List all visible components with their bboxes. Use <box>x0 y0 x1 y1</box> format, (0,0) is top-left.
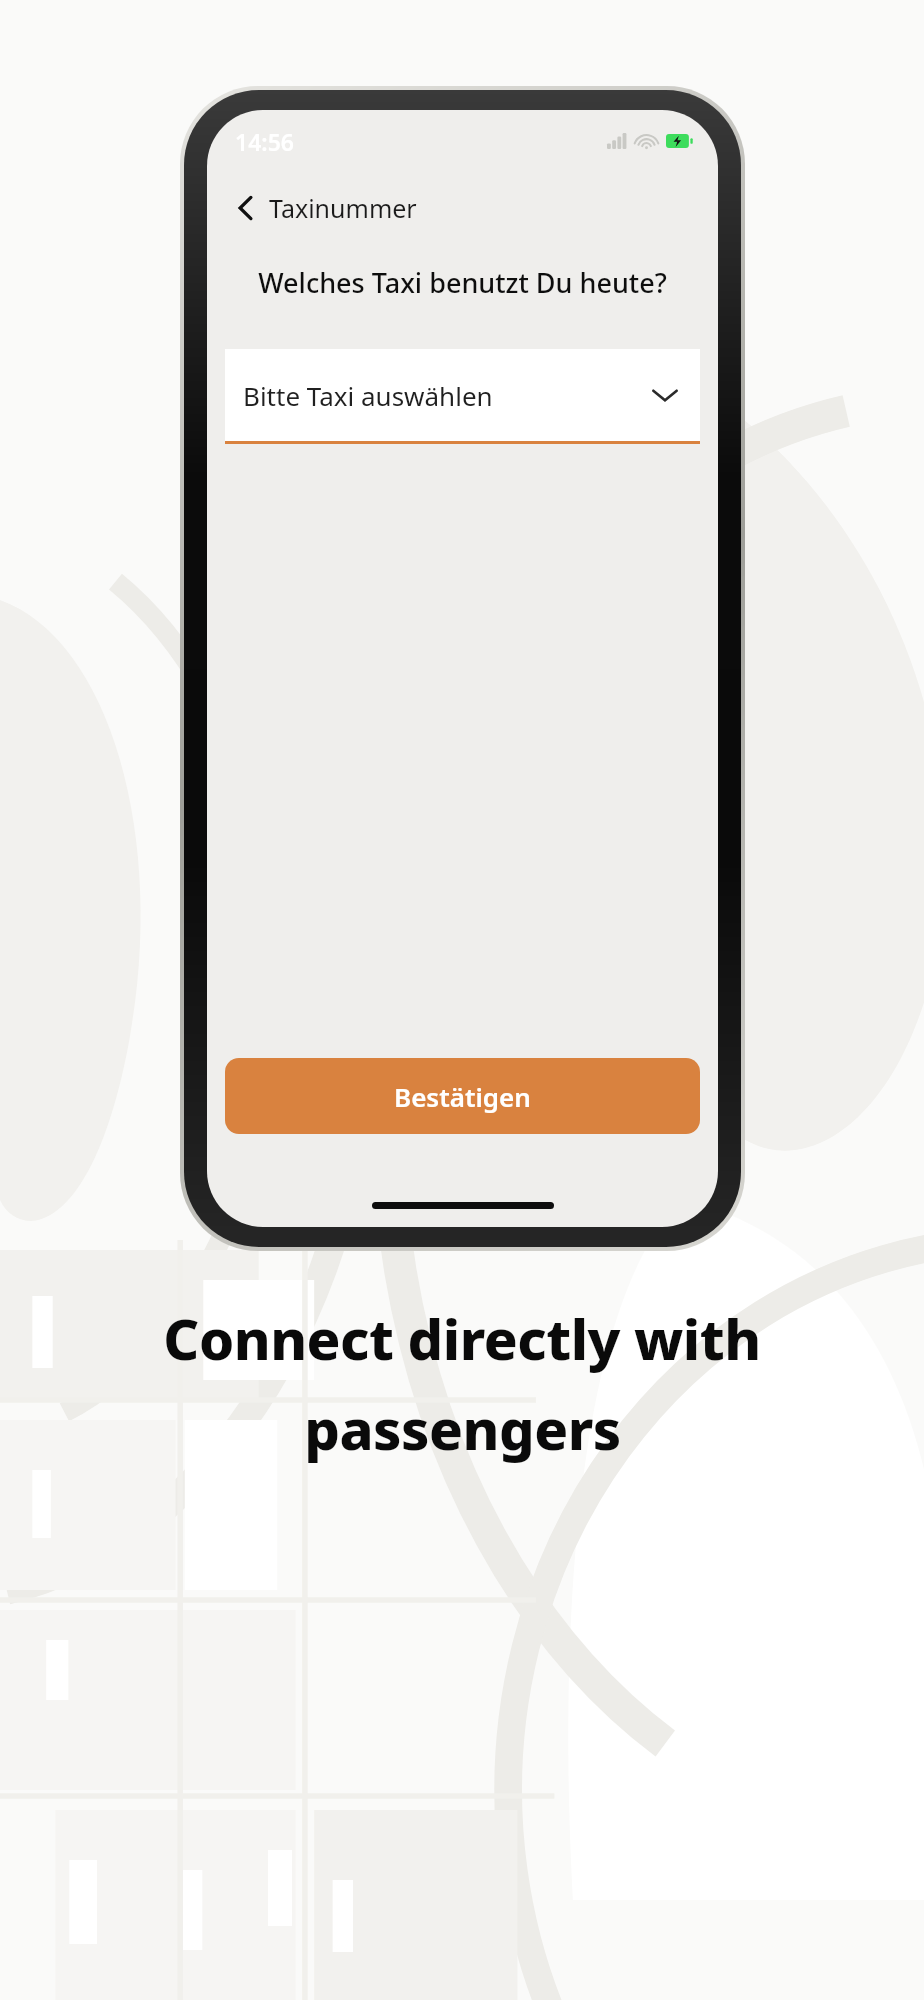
staticText: passengers <box>304 1390 621 1466</box>
staticText: Taxinummer <box>269 191 417 225</box>
button[interactable]: Back <box>227 172 718 244</box>
button[interactable]: Bestätigen <box>225 1058 700 1134</box>
other: Open taxi list <box>648 378 682 412</box>
staticText: Bitte Taxi auswählen <box>243 378 493 413</box>
staticText: Connect directly with <box>163 1300 761 1376</box>
staticText: Welches Taxi benutzt Du heute? <box>207 264 718 301</box>
staticText: 14:56 <box>235 126 294 157</box>
other: Back <box>227 190 263 226</box>
staticText: Bestätigen <box>394 1079 531 1114</box>
button[interactable]: Bitte Taxi auswählen <box>225 349 700 444</box>
